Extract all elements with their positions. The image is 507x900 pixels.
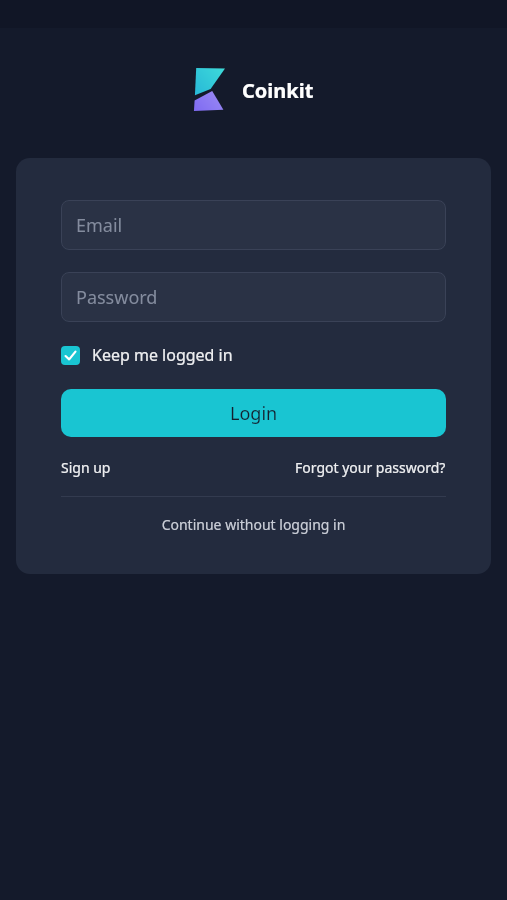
button[interactable]: Continue without logging in	[61, 515, 446, 534]
button[interactable]: Forgot your password?	[295, 458, 446, 477]
button[interactable]: Sign up	[61, 458, 111, 477]
button[interactable]: Login	[61, 389, 446, 437]
staticText: Email	[76, 213, 123, 238]
staticText: Password	[76, 285, 158, 310]
staticText: Login	[230, 401, 278, 426]
button[interactable]: Password	[61, 272, 446, 322]
button[interactable]: Keep me logged in	[61, 344, 233, 366]
staticText: Keep me logged in	[92, 344, 233, 366]
button[interactable]: Email	[61, 200, 446, 250]
staticText: Coinkit	[242, 77, 314, 104]
